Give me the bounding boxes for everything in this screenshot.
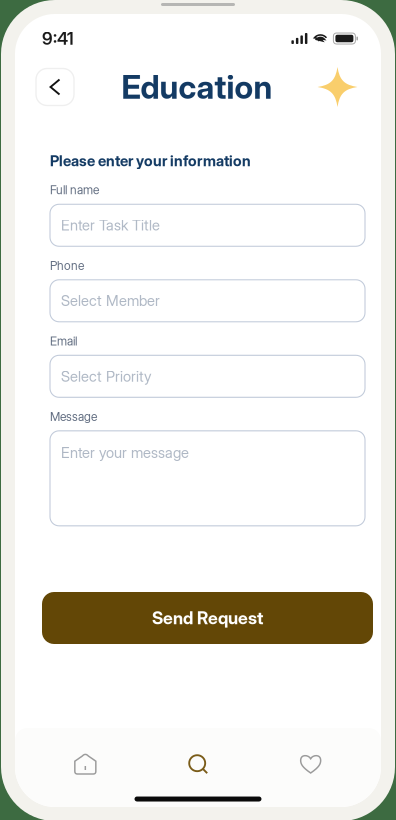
button[interactable]: Search: [142, 740, 254, 788]
button[interactable]: Favorites: [254, 740, 367, 788]
button[interactable]: Select Priority: [50, 355, 365, 397]
staticText: Please enter your information: [50, 152, 251, 170]
staticText: Send Request: [152, 607, 263, 628]
button[interactable]: Enter Task Title: [50, 204, 365, 246]
button[interactable]: Back: [36, 68, 74, 105]
staticText: Phone: [50, 258, 84, 273]
button[interactable]: Enter your message: [50, 431, 365, 526]
staticText: 9:41: [42, 28, 74, 49]
staticText: Enter Task Title: [61, 216, 160, 234]
button[interactable]: Home: [29, 740, 142, 788]
staticText: Full name: [50, 183, 99, 197]
button[interactable]: Select Member: [50, 280, 365, 322]
staticText: Enter your message: [61, 444, 189, 461]
button[interactable]: Send Request: [42, 592, 373, 644]
staticText: Select Member: [61, 292, 160, 310]
button[interactable]: AI assistant: [317, 67, 358, 107]
staticText: Email: [50, 334, 77, 348]
staticText: Select Priority: [61, 367, 152, 385]
staticText: Education: [121, 68, 272, 106]
staticText: Message: [50, 409, 97, 424]
